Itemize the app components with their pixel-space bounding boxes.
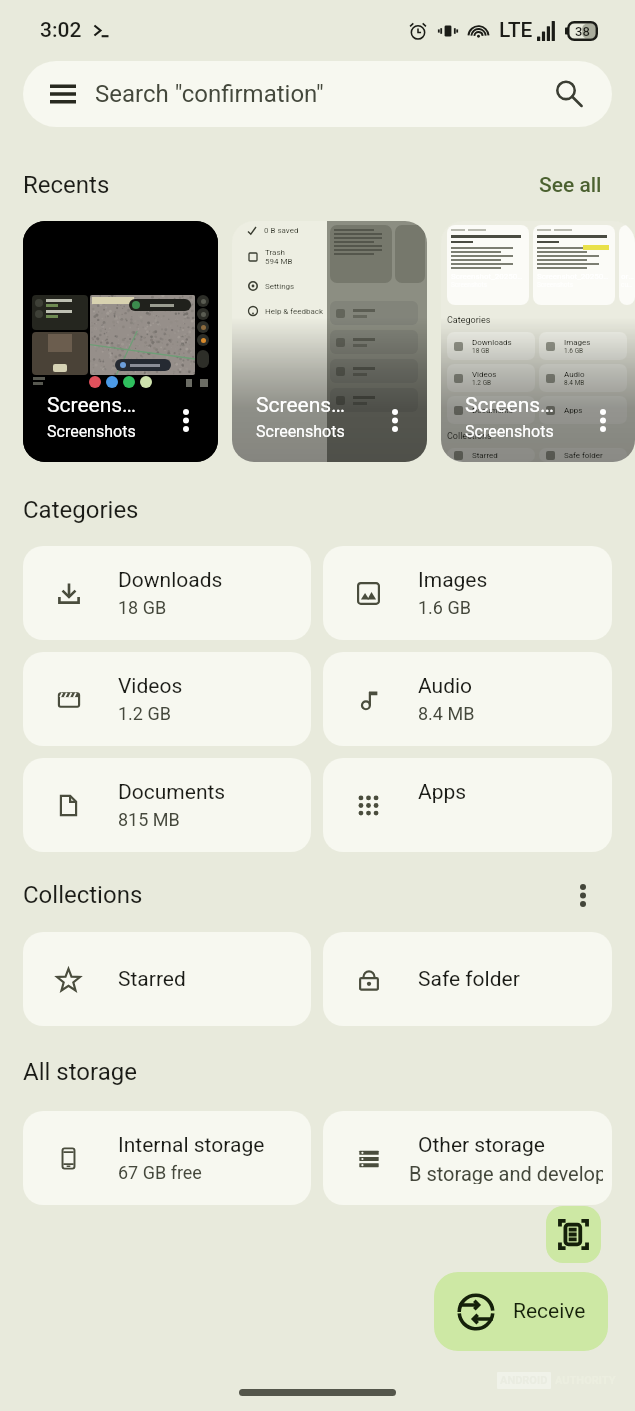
button[interactable]: Safe folder <box>323 932 612 1026</box>
staticText: Other storage <box>418 1133 545 1158</box>
staticText: Recents <box>23 171 110 199</box>
staticText: LTE <box>499 18 533 43</box>
staticText: Starred <box>472 451 498 460</box>
staticText: 8.4 MB <box>418 703 475 724</box>
staticText: Documents <box>472 406 513 415</box>
staticText: 18 GB <box>118 597 167 618</box>
button[interactable]: Images <box>323 546 612 640</box>
staticText: Videos <box>118 674 183 699</box>
staticText: Audio <box>564 370 585 379</box>
button[interactable]: More options <box>586 403 620 437</box>
button[interactable]: Other storage <box>323 1111 612 1205</box>
staticText: Collections <box>447 431 492 442</box>
staticText: Screens… <box>465 393 555 418</box>
staticText: Documents <box>118 780 226 805</box>
button[interactable]: Receive <box>434 1272 608 1351</box>
staticText: Screens… <box>256 393 346 418</box>
staticText: Screenshots <box>256 422 345 441</box>
staticText: 3:02 <box>40 18 82 43</box>
button[interactable]: Search "confirmation" <box>23 61 612 127</box>
staticText: 8.4 MB <box>564 379 585 387</box>
staticText: Apps <box>564 406 583 415</box>
staticText: 1.6 GB <box>564 347 584 355</box>
staticText: Apps <box>418 780 467 805</box>
staticText: 594 MB <box>265 257 293 266</box>
button[interactable]: Internal storage <box>23 1111 311 1205</box>
staticText: 38 <box>575 24 590 39</box>
staticText: 67 GB free <box>118 1162 202 1183</box>
staticText: Receive <box>513 1299 586 1324</box>
button[interactable]: More options <box>563 875 603 915</box>
staticText: Help & feedback <box>265 307 324 316</box>
button[interactable]: Screens… <box>23 221 218 462</box>
staticText: All storage <box>23 1058 137 1086</box>
staticText: Settings <box>265 282 295 291</box>
staticText: Audio <box>418 674 473 699</box>
button[interactable]: Downloads <box>23 546 311 640</box>
button[interactable]: Videos <box>23 652 311 746</box>
staticText: Trash <box>265 248 285 257</box>
staticText: B storage and developer <box>409 1162 603 1184</box>
staticText: Starred <box>118 967 186 992</box>
button[interactable]: More options <box>378 403 412 437</box>
staticText: 0 B saved <box>264 226 299 235</box>
staticText: Categories <box>447 315 491 326</box>
button[interactable]: See all <box>533 169 618 202</box>
staticText: Internal storage <box>118 1133 265 1158</box>
staticText: Categories <box>23 496 139 524</box>
button[interactable]: Starred <box>23 932 311 1026</box>
staticText: Videos <box>472 370 497 379</box>
staticText: Screenshots <box>465 422 554 441</box>
staticText: Safe folder <box>418 967 520 992</box>
staticText: 1.6 GB <box>418 597 471 618</box>
button[interactable]: Scan document <box>546 1206 601 1263</box>
staticText: Screenshots <box>47 422 136 441</box>
staticText: ANDROID <box>500 1374 548 1387</box>
staticText: 18 GB <box>472 347 490 355</box>
staticText: 1.2 GB <box>472 379 492 387</box>
staticText: Images <box>418 568 488 593</box>
staticText: Downloads <box>118 568 223 593</box>
staticText: Search "confirmation" <box>95 80 324 108</box>
button[interactable]: Audio <box>323 652 612 746</box>
staticText: See all <box>539 173 602 198</box>
staticText: 815 MB <box>118 809 180 830</box>
staticText: 1.2 GB <box>118 703 171 724</box>
button[interactable]: Screenshot_20250… <box>441 221 635 462</box>
staticText: Safe folder <box>564 451 603 460</box>
staticText: Collections <box>23 881 143 909</box>
button[interactable]: Documents <box>23 758 311 852</box>
staticText: Downloads <box>472 338 512 347</box>
button[interactable]: 0 B saved <box>232 221 427 462</box>
staticText: Images <box>564 338 591 347</box>
button[interactable]: More options <box>169 403 203 437</box>
button[interactable]: Apps <box>323 758 612 852</box>
staticText: Screens… <box>47 393 137 418</box>
